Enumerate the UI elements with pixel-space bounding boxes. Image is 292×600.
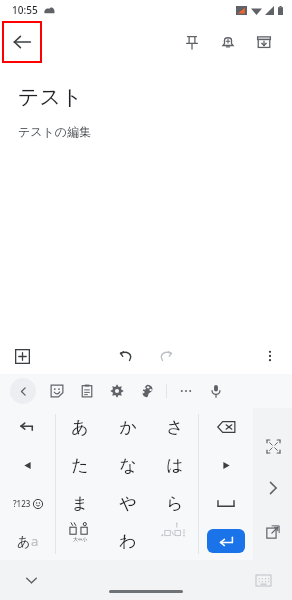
button[interactable]: Symbols and emoji: [0, 484, 55, 522]
button[interactable]: Hide keyboard: [18, 567, 44, 593]
button[interactable]: Cursor right: [199, 446, 253, 484]
button[interactable]: Punctuation: [151, 522, 198, 542]
button[interactable]: Voice input: [203, 378, 229, 404]
button[interactable]: Pin note: [174, 24, 210, 60]
button[interactable]: ら: [151, 484, 198, 522]
staticText: ?123: [13, 498, 31, 509]
staticText: テストの編集: [18, 124, 92, 139]
button[interactable]: Switch input method: [250, 567, 276, 593]
button[interactable]: Add: [6, 340, 38, 372]
staticText: ま: [71, 493, 89, 514]
staticText: あ: [17, 533, 31, 549]
button[interactable]: Next: [259, 474, 287, 502]
button[interactable]: Archive: [246, 24, 282, 60]
button[interactable]: や: [104, 484, 151, 522]
button[interactable]: Space: [199, 484, 253, 522]
button[interactable]: Undo: [110, 340, 142, 372]
button[interactable]: Clipboard: [74, 378, 100, 404]
button[interactable]: Dakuten: [56, 522, 104, 542]
button[interactable]: Resize keyboard: [259, 432, 287, 460]
button[interactable]: か: [104, 408, 151, 446]
button[interactable]: Undo key: [0, 408, 55, 446]
button[interactable]: ま: [56, 484, 104, 522]
button[interactable]: Collapse toolbar: [10, 378, 36, 404]
button[interactable]: Redo: [150, 340, 182, 372]
button[interactable]: More tools: [173, 378, 199, 404]
staticText: さ: [166, 417, 184, 438]
button[interactable]: な: [104, 446, 151, 484]
button[interactable]: さ: [151, 408, 198, 446]
staticText: か: [119, 417, 137, 438]
button[interactable]: Floating keyboard: [259, 518, 287, 546]
staticText: ら: [166, 493, 184, 514]
staticText: あ: [71, 417, 89, 438]
staticText: な: [119, 455, 137, 476]
button[interactable]: Backspace: [199, 408, 253, 446]
button[interactable]: Back: [4, 23, 40, 61]
staticText: は: [166, 455, 184, 476]
staticText: 10:55: [12, 3, 38, 17]
button[interactable]: Enter: [199, 522, 253, 560]
button[interactable]: Settings: [104, 378, 130, 404]
button[interactable]: More options: [254, 340, 286, 372]
staticText: テスト: [18, 84, 83, 110]
staticText: a: [31, 532, 39, 550]
button[interactable]: Input mode: [0, 522, 55, 560]
staticText: や: [119, 493, 137, 514]
staticText: た: [71, 455, 89, 476]
button[interactable]: Reminder: [210, 24, 246, 60]
staticText: 大⇔小: [73, 536, 88, 542]
button[interactable]: た: [56, 446, 104, 484]
button[interactable]: Cursor left: [0, 446, 55, 484]
button[interactable]: Stickers: [44, 378, 70, 404]
button[interactable]: は: [151, 446, 198, 484]
button[interactable]: Themes: [134, 378, 160, 404]
button[interactable]: わ: [104, 522, 151, 560]
staticText: わ: [119, 531, 137, 552]
button[interactable]: あ: [56, 408, 104, 446]
